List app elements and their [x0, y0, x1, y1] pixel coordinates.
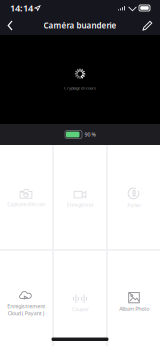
button[interactable]: Back [0, 16, 21, 35]
staticText: Caméra buanderie [43, 20, 116, 31]
staticText: Cryptage en cours [64, 85, 96, 91]
staticText: 14:14 [10, 2, 33, 14]
staticText: Enregistrement Cloud ( Payant ) [7, 303, 45, 317]
staticText: Album Photo [119, 305, 149, 312]
staticText: 90 % [84, 131, 95, 138]
button[interactable]: Capture d'écran [0, 145, 52, 249]
staticText: Parler [127, 202, 141, 209]
staticText: Couper [71, 306, 88, 313]
staticText: Capture d'écran [7, 201, 45, 208]
staticText: Enregistrer [66, 201, 93, 208]
button[interactable]: Enregistrement Cloud ( Payant ) [0, 251, 52, 346]
button[interactable]: Album Photo [108, 251, 160, 346]
button[interactable]: Edit [135, 16, 160, 35]
button[interactable]: Couper [54, 251, 106, 346]
